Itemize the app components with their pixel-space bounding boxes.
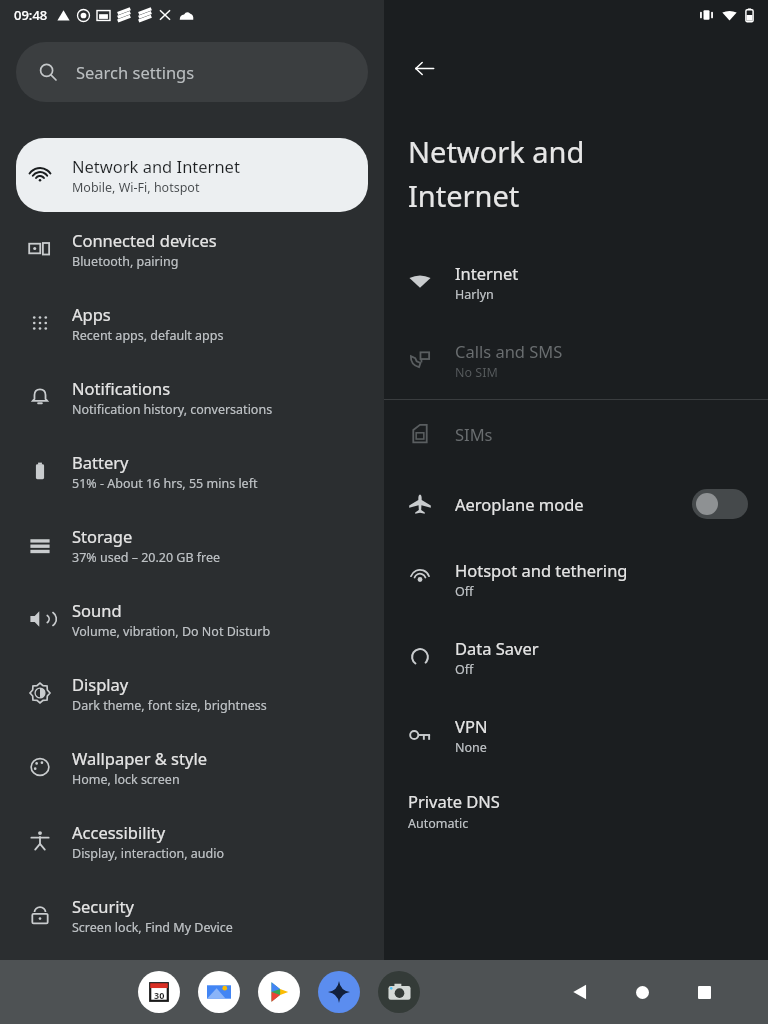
staticText: Notifications bbox=[72, 377, 171, 399]
staticText: Calls and SMS bbox=[455, 340, 563, 362]
button[interactable]: Search settings bbox=[16, 42, 368, 102]
staticText: Off bbox=[455, 661, 474, 678]
staticText: VPN bbox=[455, 715, 488, 737]
button[interactable]: Hotspot and tethering bbox=[384, 540, 768, 618]
staticText: 30 bbox=[154, 989, 165, 1001]
staticText: Aeroplane mode bbox=[455, 493, 584, 515]
button[interactable]: Network and Internet bbox=[16, 138, 368, 212]
button[interactable]: Camera bbox=[378, 971, 420, 1013]
staticText: Off bbox=[455, 583, 474, 600]
staticText: No SIM bbox=[455, 364, 498, 381]
staticText: Mobile, Wi-Fi, hotspot bbox=[72, 179, 200, 196]
button[interactable]: Security bbox=[16, 878, 368, 952]
staticText: Private DNS bbox=[408, 790, 500, 812]
staticText: 51% - About 16 hrs, 55 mins left bbox=[72, 475, 258, 492]
button[interactable]: Notifications bbox=[16, 360, 368, 434]
staticText: None bbox=[455, 739, 487, 756]
staticText: Display, interaction, audio bbox=[72, 845, 225, 862]
button[interactable]: Data Saver bbox=[384, 618, 768, 696]
staticText: Dark theme, font size, brightness bbox=[72, 697, 267, 714]
button[interactable]: Storage bbox=[16, 508, 368, 582]
button[interactable]: Sound bbox=[16, 582, 368, 656]
button[interactable]: Recents bbox=[682, 970, 726, 1014]
button[interactable]: Photos bbox=[198, 971, 240, 1013]
staticText: Wallpaper & style bbox=[72, 747, 207, 769]
staticText: Hotspot and tethering bbox=[455, 559, 628, 581]
button[interactable]: Home bbox=[620, 970, 664, 1014]
button[interactable]: Play Store bbox=[258, 971, 300, 1013]
button[interactable]: SIMs bbox=[384, 400, 768, 468]
button[interactable]: Wallpaper & style bbox=[16, 730, 368, 804]
staticText: Screen lock, Find My Device bbox=[72, 919, 233, 936]
staticText: Network and Internet bbox=[72, 155, 240, 177]
button[interactable]: Aeroplane mode toggle bbox=[692, 489, 748, 519]
button[interactable]: Gemini bbox=[318, 971, 360, 1013]
staticText: Battery bbox=[72, 451, 129, 473]
staticText: Network and Internet bbox=[408, 132, 585, 215]
staticText: SIMs bbox=[455, 423, 493, 445]
staticText: Harlyn bbox=[455, 286, 494, 303]
staticText: Data Saver bbox=[455, 637, 539, 659]
staticText: Accessibility bbox=[72, 821, 166, 843]
staticText: Automatic bbox=[408, 815, 469, 832]
button[interactable]: Accessibility bbox=[16, 804, 368, 878]
button[interactable]: Calendar bbox=[138, 971, 180, 1013]
staticText: Recent apps, default apps bbox=[72, 327, 224, 344]
staticText: Home, lock screen bbox=[72, 771, 180, 788]
button[interactable]: Aeroplane mode bbox=[384, 468, 768, 540]
staticText: 37% used – 20.20 GB free bbox=[72, 549, 221, 566]
button[interactable]: Back bbox=[398, 42, 450, 94]
button[interactable]: Internet bbox=[384, 243, 768, 321]
button[interactable]: Private DNS bbox=[384, 784, 768, 842]
staticText: Bluetooth, pairing bbox=[72, 253, 179, 270]
button[interactable]: VPN bbox=[384, 696, 768, 774]
staticText: Volume, vibration, Do Not Disturb bbox=[72, 623, 271, 640]
staticText: Apps bbox=[72, 303, 111, 325]
staticText: Display bbox=[72, 673, 129, 695]
button[interactable]: Display bbox=[16, 656, 368, 730]
staticText: Notification history, conversations bbox=[72, 401, 273, 418]
staticText: Storage bbox=[72, 525, 133, 547]
button[interactable]: Connected devices bbox=[16, 212, 368, 286]
button[interactable]: Apps bbox=[16, 286, 368, 360]
staticText: 09:48 bbox=[14, 6, 48, 24]
staticText: Internet bbox=[455, 262, 519, 284]
button[interactable]: Battery bbox=[16, 434, 368, 508]
staticText: Security bbox=[72, 895, 134, 917]
staticText: Connected devices bbox=[72, 229, 217, 251]
staticText: Sound bbox=[72, 599, 122, 621]
button[interactable]: Back bbox=[558, 970, 602, 1014]
staticText: Search settings bbox=[76, 61, 195, 83]
button[interactable]: Calls and SMS bbox=[384, 321, 768, 399]
